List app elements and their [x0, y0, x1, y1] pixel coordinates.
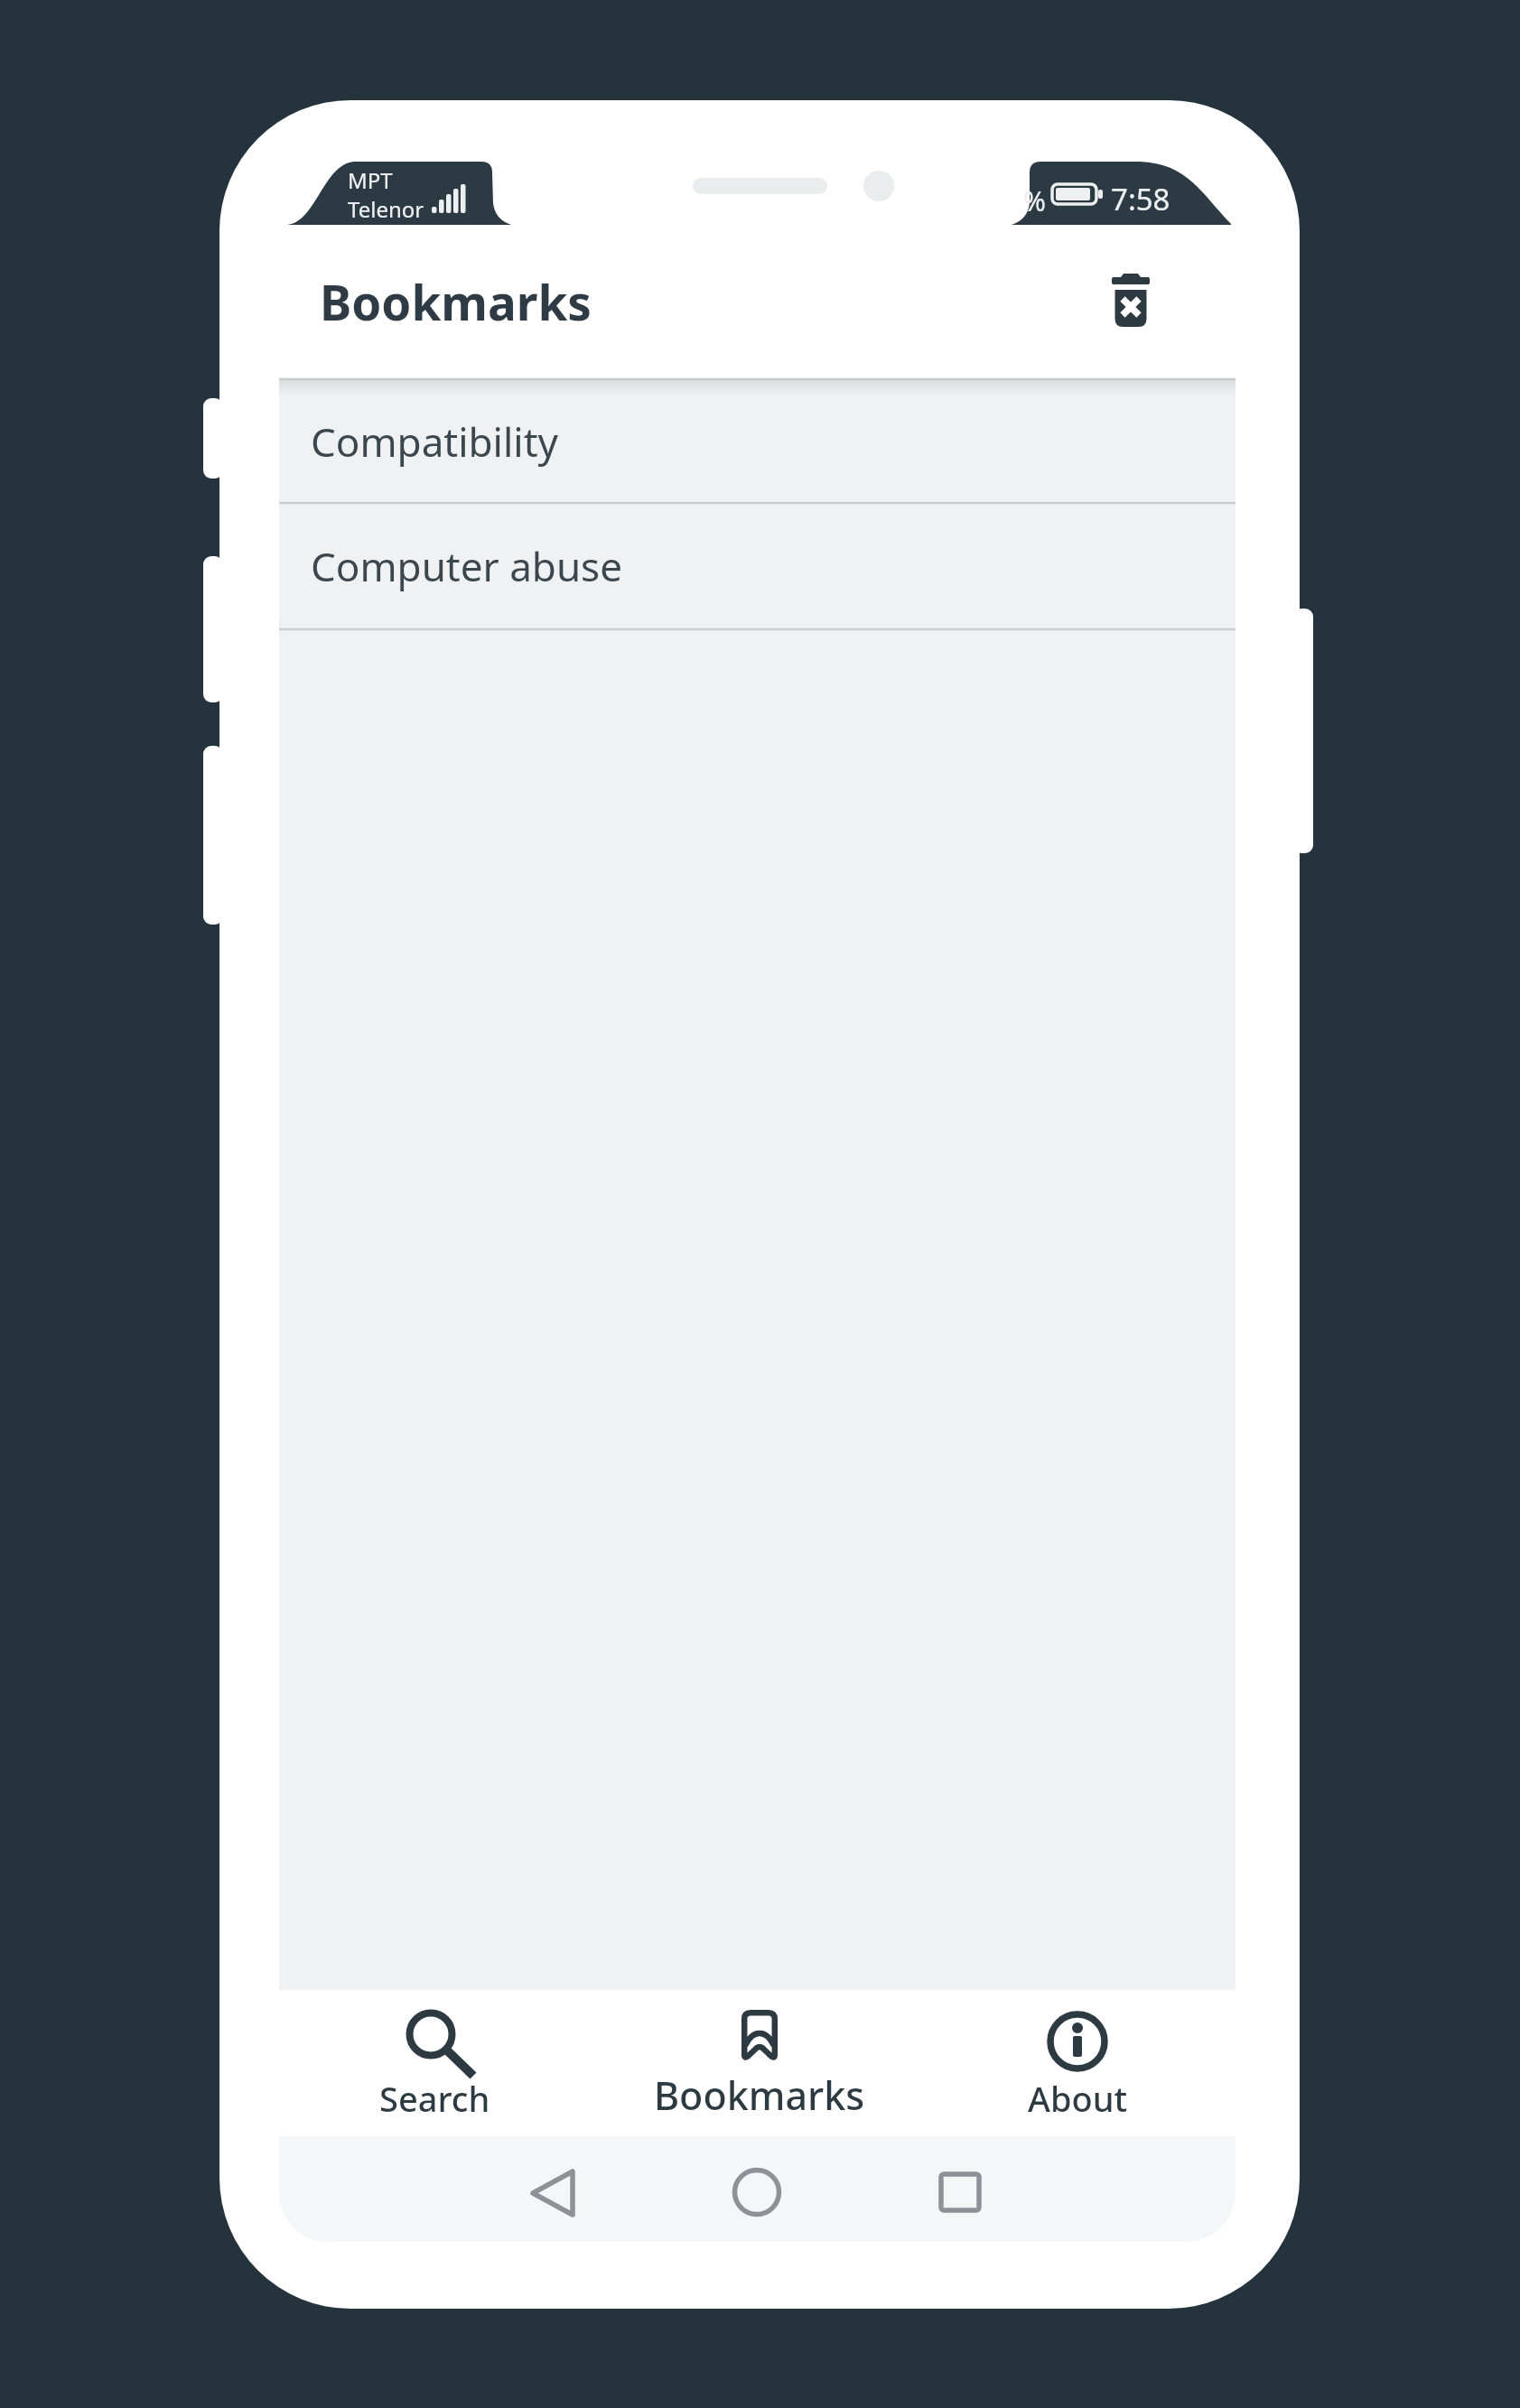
- button[interactable]: [928, 2160, 992, 2223]
- button[interactable]: Search: [344, 1990, 525, 2136]
- staticText: %: [1023, 182, 1046, 219]
- button[interactable]: Bookmarks: [624, 1990, 895, 2136]
- staticText: Search: [379, 2075, 490, 2122]
- button[interactable]: Computer abuse: [279, 503, 1236, 629]
- staticText: MPT: [348, 165, 393, 195]
- staticText: Bookmarks: [654, 2069, 865, 2122]
- button[interactable]: [1095, 265, 1167, 343]
- button[interactable]: [725, 2160, 788, 2223]
- button[interactable]: Compatibility: [279, 379, 1236, 503]
- staticText: About: [1028, 2075, 1128, 2122]
- staticText: Bookmarks: [320, 269, 592, 334]
- button[interactable]: [521, 2161, 584, 2224]
- staticText: Computer abuse: [311, 539, 622, 593]
- button[interactable]: About: [987, 1990, 1168, 2136]
- staticText: 7:58: [1111, 179, 1170, 219]
- staticText: Telenor: [348, 194, 424, 224]
- staticText: Compatibility: [311, 414, 558, 469]
